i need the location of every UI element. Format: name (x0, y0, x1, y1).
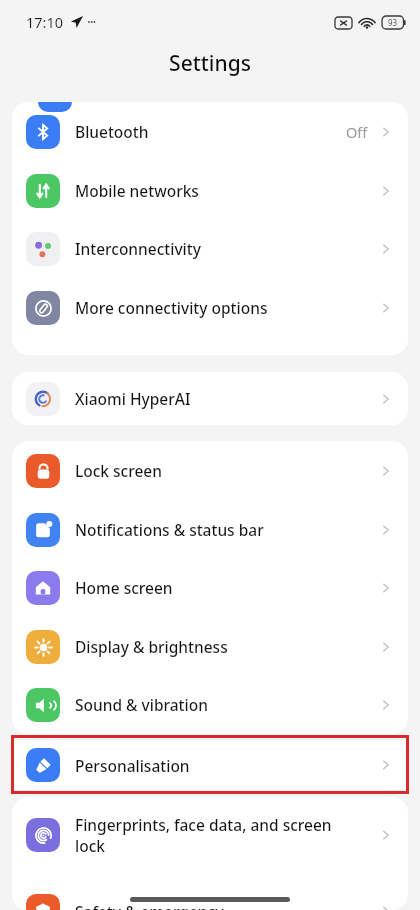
staticText: Home screen (75, 577, 378, 598)
staticText: Safety & emergency (75, 901, 378, 910)
button[interactable]: Display & brightness (12, 617, 408, 676)
staticText: Off (346, 122, 368, 142)
button[interactable]: Xiaomi HyperAI (12, 372, 408, 425)
button[interactable]: Home screen (12, 558, 408, 617)
staticText: Lock screen (75, 460, 378, 481)
staticText: Settings (169, 49, 251, 78)
staticText: Sound & vibration (75, 694, 378, 715)
button[interactable]: Sound & vibration (12, 675, 408, 734)
staticText: Xiaomi HyperAI (75, 388, 378, 409)
button[interactable]: Interconnectivity (12, 219, 408, 278)
staticText: Fingerprints, face data, and screen (75, 814, 332, 835)
button[interactable]: Bluetooth (12, 102, 408, 161)
staticText: More connectivity options (75, 297, 378, 318)
staticText: Personalisation (75, 755, 378, 776)
staticText: 93 (388, 17, 398, 28)
button[interactable]: Fingerprints, face data, and screen (12, 797, 408, 873)
staticText: Bluetooth (75, 121, 346, 142)
staticText: Mobile networks (75, 180, 378, 201)
staticText: Interconnectivity (75, 238, 378, 259)
button[interactable]: Mobile networks (12, 161, 408, 220)
button[interactable]: Safety & emergency (12, 873, 408, 910)
button[interactable]: Personalisation (12, 740, 408, 790)
staticText: Notifications & status bar (75, 519, 378, 540)
button[interactable]: More connectivity options (12, 278, 408, 337)
button[interactable]: Notifications & status bar (12, 500, 408, 559)
staticText: lock (75, 835, 105, 856)
button[interactable]: Lock screen (12, 441, 408, 500)
staticText: 17:10 (26, 12, 64, 32)
staticText: Display & brightness (75, 636, 378, 657)
